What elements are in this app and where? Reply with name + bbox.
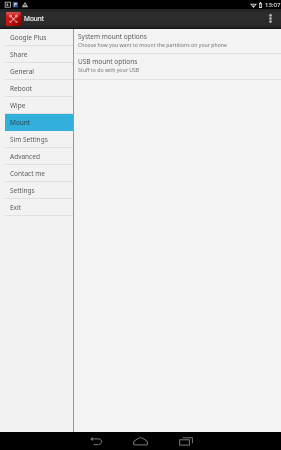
button[interactable]: Sim Settings (5, 131, 73, 148)
staticText: Sim Settings (10, 135, 48, 144)
staticText: System mount options (78, 32, 147, 41)
staticText: USB mount options (78, 57, 138, 66)
button[interactable]: System mount options (74, 29, 281, 53)
button[interactable]: More options (259, 9, 281, 28)
button[interactable]: Mount (5, 114, 73, 131)
button[interactable]: Wipe (5, 97, 73, 114)
staticText: Contact me (10, 169, 45, 178)
staticText: General (10, 67, 34, 76)
button[interactable]: Reboot (5, 80, 73, 97)
staticText: Advanced (10, 152, 40, 161)
button[interactable]: Share (5, 46, 73, 63)
button[interactable]: USB mount options (74, 54, 281, 79)
staticText: Exit (10, 203, 22, 212)
button[interactable]: General (5, 63, 73, 80)
button[interactable]: Back (82, 432, 110, 450)
other: TWRP (6, 12, 21, 26)
staticText: Share (10, 50, 28, 59)
staticText: 13:07 (265, 1, 281, 9)
button[interactable]: Contact me (5, 165, 73, 182)
staticText: Choose how you want to mount the partiti… (78, 41, 227, 48)
staticText: Mount (10, 118, 31, 127)
staticText: Wipe (10, 101, 26, 110)
button[interactable]: Exit (5, 199, 73, 216)
staticText: Settings (10, 186, 35, 195)
button[interactable]: Settings (5, 182, 73, 199)
button[interactable]: Google Plus (5, 29, 73, 46)
staticText: Google Plus (10, 33, 47, 42)
staticText: Mount (24, 14, 45, 23)
button[interactable]: Advanced (5, 148, 73, 165)
staticText: Reboot (10, 84, 32, 93)
button[interactable]: Home (126, 432, 154, 450)
button[interactable]: Recent apps (172, 432, 200, 450)
staticText: Stuff to do with your USB (78, 66, 140, 73)
